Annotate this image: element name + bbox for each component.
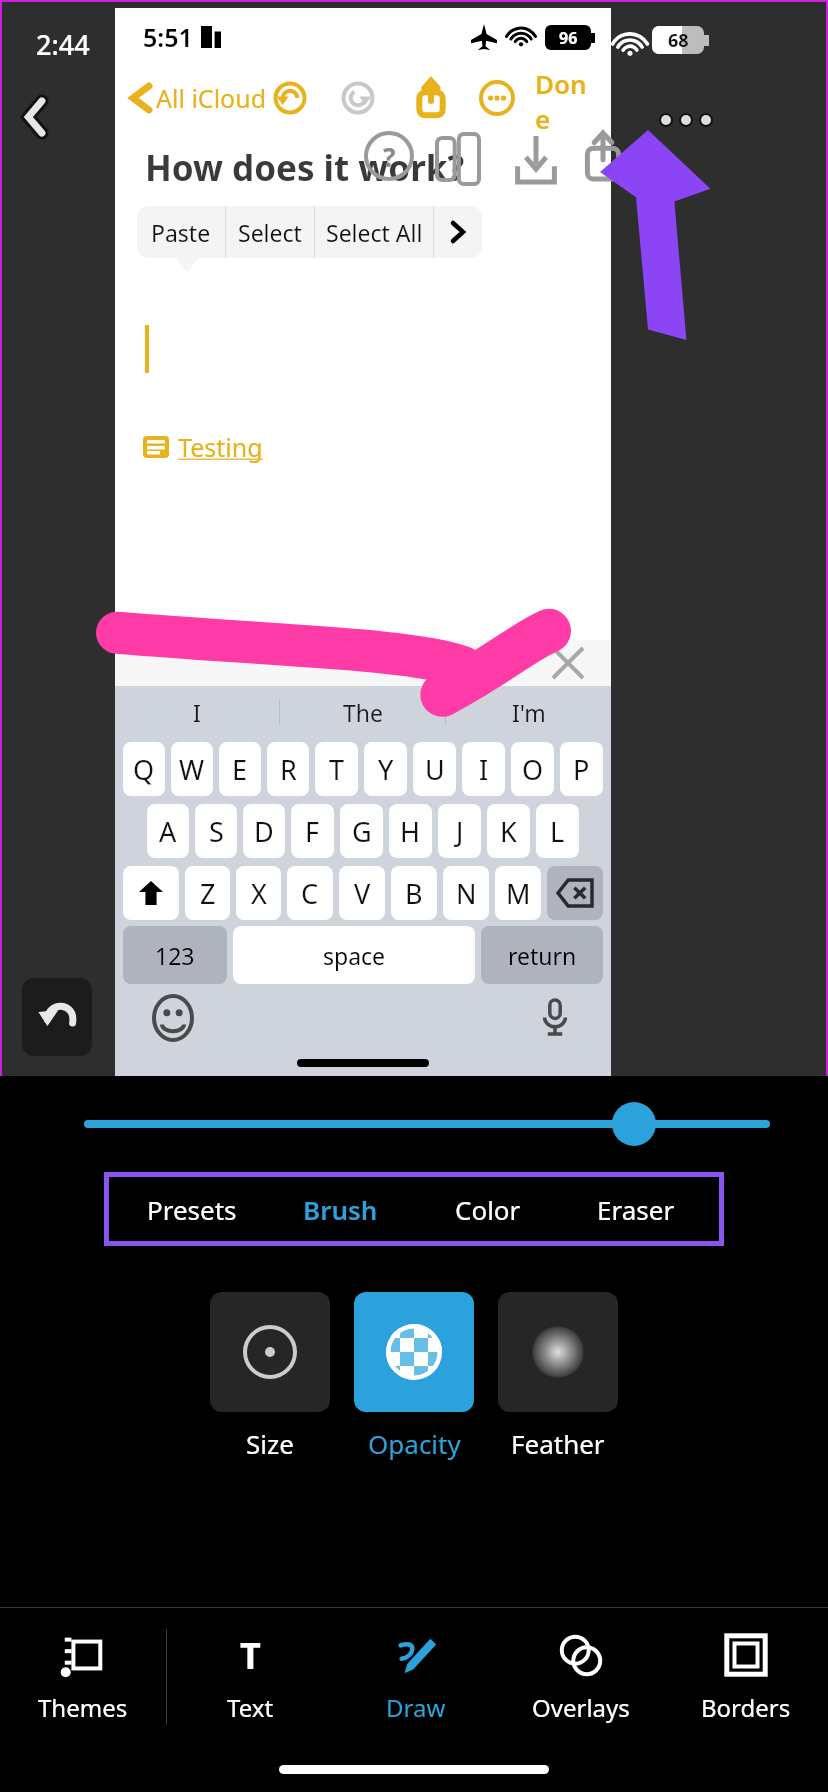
button[interactable]: S <box>195 804 237 858</box>
button[interactable]: Redo <box>339 79 377 117</box>
button[interactable]: V <box>339 866 385 920</box>
staticText: D <box>254 813 274 850</box>
button[interactable]: More options <box>654 96 718 144</box>
button[interactable]: R <box>267 742 309 796</box>
button[interactable]: Overlays <box>498 1608 663 1746</box>
button[interactable]: I'm <box>446 686 611 738</box>
button[interactable]: P <box>560 742 603 796</box>
button[interactable]: D <box>243 804 285 858</box>
button[interactable]: L <box>536 804 579 858</box>
button[interactable]: Undo <box>271 79 309 117</box>
button[interactable]: M <box>495 866 541 920</box>
button[interactable]: C <box>287 866 333 920</box>
button[interactable]: O <box>511 742 554 796</box>
staticText: I <box>193 697 201 728</box>
button[interactable]: Select <box>226 206 314 258</box>
button[interactable]: Borders <box>663 1608 828 1746</box>
button[interactable]: A <box>147 804 189 858</box>
button[interactable]: Q <box>123 742 165 796</box>
staticText: G <box>352 813 372 850</box>
staticText: Borders <box>701 1691 791 1724</box>
button[interactable]: X <box>236 866 281 920</box>
staticText: Brush <box>303 1192 378 1227</box>
button[interactable]: I <box>115 686 279 738</box>
button[interactable]: H <box>389 804 432 858</box>
staticText: 5:51 <box>143 20 193 54</box>
button[interactable]: B <box>391 866 437 920</box>
staticText: 2:44 <box>36 26 90 63</box>
staticText: T <box>329 751 345 788</box>
staticText: Done <box>535 66 595 130</box>
button[interactable]: Shift <box>123 866 179 920</box>
button[interactable]: Size <box>210 1292 330 1461</box>
button[interactable]: Color <box>414 1172 562 1246</box>
button[interactable]: Done <box>535 66 595 130</box>
staticText: The <box>343 697 383 728</box>
button[interactable]: J <box>438 804 481 858</box>
button[interactable]: W <box>171 742 213 796</box>
staticText: Draw <box>386 1691 446 1724</box>
staticText: I <box>479 751 489 788</box>
button[interactable]: E <box>219 742 261 796</box>
button[interactable]: Y <box>364 742 407 796</box>
staticText: Color <box>455 1192 521 1227</box>
staticText: 68 <box>668 28 689 53</box>
button[interactable]: Feather <box>498 1292 618 1461</box>
staticText: N <box>456 875 477 912</box>
staticText: E <box>232 751 248 788</box>
button[interactable]: N <box>443 866 489 920</box>
staticText: space <box>323 940 386 971</box>
button[interactable]: Draw <box>333 1608 498 1746</box>
button[interactable]: Select All <box>315 206 433 258</box>
staticText: L <box>550 813 565 850</box>
button[interactable]: Testing <box>143 430 263 464</box>
staticText: S <box>209 813 224 850</box>
button[interactable]: Eraser <box>562 1172 710 1246</box>
button[interactable]: T <box>167 1608 333 1746</box>
button[interactable]: F <box>291 804 334 858</box>
button[interactable]: Opacity <box>354 1292 474 1461</box>
button[interactable]: Backspace <box>547 866 603 920</box>
button[interactable]: The <box>280 686 445 738</box>
staticText: Q <box>133 751 155 788</box>
button[interactable]: U <box>413 742 456 796</box>
button[interactable]: space <box>233 926 475 984</box>
staticText: H <box>400 813 421 850</box>
staticText: I'm <box>512 697 546 728</box>
button[interactable]: Paste <box>137 206 225 258</box>
button[interactable]: Back <box>6 86 68 148</box>
staticText: A <box>159 813 177 850</box>
staticText: Paste <box>151 217 211 248</box>
staticText: Testing <box>178 430 263 464</box>
button[interactable]: 123 <box>123 926 227 984</box>
button[interactable]: More <box>477 78 517 118</box>
button[interactable]: Undo <box>22 978 92 1056</box>
button[interactable]: Brush <box>266 1172 414 1246</box>
button[interactable]: Opacity slider <box>0 1098 828 1150</box>
staticText: Presets <box>147 1192 237 1227</box>
button[interactable]: Themes <box>0 1608 166 1746</box>
staticText: O <box>522 751 544 788</box>
staticText: Text <box>227 1691 274 1724</box>
button[interactable]: Presets <box>118 1172 266 1246</box>
staticText: Select <box>238 217 302 248</box>
staticText: How does it work? <box>145 144 465 192</box>
button[interactable]: Emoji <box>151 996 195 1040</box>
button[interactable]: K <box>487 804 530 858</box>
button[interactable]: More actions <box>434 206 482 258</box>
button[interactable]: G <box>340 804 383 858</box>
button[interactable]: T <box>315 742 358 796</box>
staticText: X <box>251 875 267 912</box>
staticText: P <box>573 751 590 788</box>
staticText: C <box>301 875 319 912</box>
button[interactable]: return <box>481 926 603 984</box>
staticText: All iCloud <box>156 81 267 115</box>
button[interactable]: Z <box>185 866 230 920</box>
button[interactable]: Share <box>411 78 451 118</box>
staticText: R <box>280 751 297 788</box>
staticText: Select All <box>326 217 423 248</box>
button[interactable]: All iCloud <box>131 81 271 115</box>
staticText: F <box>305 813 320 850</box>
button[interactable]: I <box>462 742 505 796</box>
button[interactable]: Dictation <box>535 998 575 1038</box>
